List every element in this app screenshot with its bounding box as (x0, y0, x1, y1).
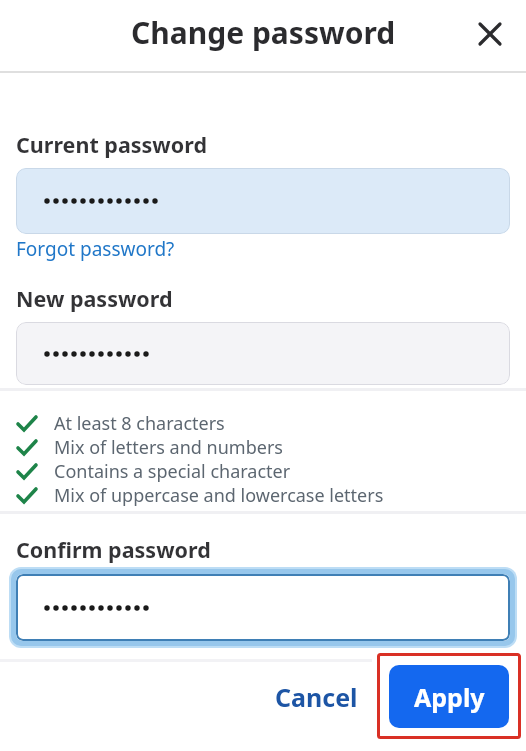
button[interactable] (474, 18, 506, 50)
staticText: Cancel (275, 680, 358, 714)
staticText: Change password (131, 12, 396, 53)
staticText: New password (16, 284, 173, 313)
button[interactable] (16, 574, 510, 641)
button[interactable] (16, 168, 510, 234)
staticText: Mix of uppercase and lowercase letters (54, 483, 384, 507)
staticText: Current password (16, 130, 207, 159)
staticText: Contains a special character (54, 459, 291, 483)
staticText: At least 8 characters (54, 411, 225, 435)
button[interactable]: Forgot password? (16, 236, 175, 262)
button[interactable]: Cancel (262, 676, 370, 718)
staticText: Forgot password? (16, 236, 175, 262)
staticText: Confirm password (16, 535, 211, 564)
staticText: Mix of letters and numbers (54, 435, 283, 459)
staticText: Apply (414, 680, 485, 714)
button[interactable] (16, 322, 510, 385)
button[interactable]: Apply (389, 665, 509, 728)
